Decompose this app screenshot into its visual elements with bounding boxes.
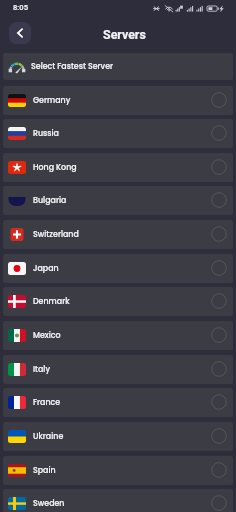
staticText: Denmark [33, 296, 70, 307]
staticText: Mexico [33, 330, 61, 341]
button[interactable]: Italy [3, 355, 233, 384]
staticText: Servers [103, 27, 146, 42]
staticText: Russia [33, 128, 59, 139]
button[interactable]: Hong Kong [3, 153, 233, 182]
button[interactable]: Sweden [3, 489, 233, 512]
staticText: Japan [33, 263, 59, 274]
staticText: Germany [33, 95, 71, 106]
button[interactable]: Russia [3, 119, 233, 148]
button[interactable]: France [3, 388, 233, 417]
button[interactable]: Spain [3, 456, 233, 485]
button[interactable]: Japan [3, 254, 233, 283]
button[interactable]: Ukraine [3, 422, 233, 451]
staticText: 8:05 [13, 3, 28, 12]
staticText: Select Fastest Server [31, 61, 114, 72]
button[interactable]: Denmark [3, 287, 233, 316]
staticText: Bulgaria [33, 195, 67, 206]
staticText: Switzerland [33, 229, 79, 240]
staticText: Sweden [33, 498, 65, 509]
staticText: France [33, 397, 61, 408]
button[interactable]: Bulgaria [3, 186, 233, 215]
staticText: Italy [33, 364, 51, 375]
staticText: Ukraine [33, 431, 64, 442]
button[interactable]: Germany [3, 86, 233, 115]
staticText: Spain [33, 465, 56, 476]
button[interactable]: Mexico [3, 321, 233, 350]
button[interactable]: Switzerland [3, 220, 233, 249]
staticText: Hong Kong [33, 162, 77, 173]
button[interactable]: Select Fastest Server [3, 53, 233, 80]
button[interactable]: Back [9, 22, 31, 44]
